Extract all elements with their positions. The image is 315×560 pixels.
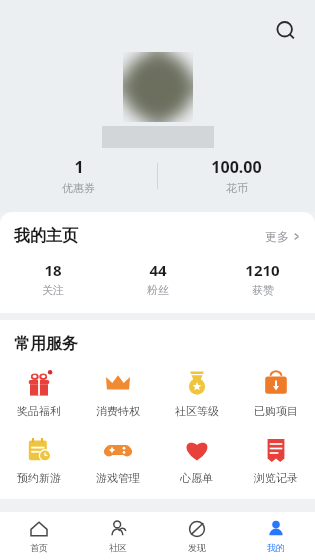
- staticText: 心愿单: [180, 471, 213, 485]
- staticText: 社区: [109, 542, 127, 553]
- button[interactable]: 已购项目: [236, 366, 315, 420]
- button[interactable]: Avatar: [123, 52, 193, 122]
- button[interactable]: 消费特权: [78, 366, 157, 420]
- staticText: 100.00: [211, 156, 262, 178]
- staticText: 预约新游: [17, 471, 61, 485]
- staticText: 44: [149, 260, 167, 280]
- staticText: 我的: [267, 542, 285, 553]
- staticText: 首页: [30, 542, 48, 553]
- button[interactable]: 更多: [265, 229, 301, 244]
- button[interactable]: 首页: [0, 512, 78, 560]
- staticText: 浏览记录: [254, 471, 298, 485]
- button[interactable]: 心愿单: [157, 433, 236, 487]
- staticText: 18: [44, 260, 62, 280]
- button[interactable]: 18: [0, 260, 105, 297]
- staticText: 奖品福利: [17, 404, 61, 418]
- staticText: 1210: [245, 260, 280, 280]
- button[interactable]: 发现: [157, 512, 236, 560]
- staticText: 更多: [265, 229, 289, 244]
- button[interactable]: 我的: [236, 512, 315, 560]
- staticText: 我的主页: [14, 226, 78, 246]
- button[interactable]: 44: [105, 260, 210, 297]
- staticText: 关注: [42, 283, 64, 297]
- button[interactable]: 1210: [210, 260, 315, 297]
- button[interactable]: 1: [0, 156, 157, 195]
- button[interactable]: 社区等级: [157, 366, 236, 420]
- button[interactable]: 100.00: [158, 156, 315, 195]
- staticText: 常用服务: [14, 334, 78, 354]
- staticText: 发现: [188, 542, 206, 553]
- staticText: 已购项目: [254, 404, 298, 418]
- button[interactable]: 奖品福利: [0, 366, 78, 420]
- staticText: 优惠券: [62, 181, 95, 195]
- staticText: 花币: [226, 181, 248, 195]
- staticText: 社区等级: [175, 404, 219, 418]
- staticText: 获赞: [252, 283, 274, 297]
- staticText: 消费特权: [96, 404, 140, 418]
- button[interactable]: 游戏管理: [78, 433, 157, 487]
- staticText: 粉丝: [147, 283, 169, 297]
- button[interactable]: 社区: [78, 512, 157, 560]
- button[interactable]: 预约新游: [0, 433, 78, 487]
- button[interactable]: 浏览记录: [236, 433, 315, 487]
- staticText: 1: [74, 156, 84, 178]
- button[interactable]: Search: [269, 14, 303, 48]
- staticText: 游戏管理: [96, 471, 140, 485]
